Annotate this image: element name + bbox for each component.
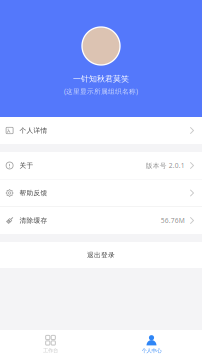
button[interactable]: 帮助反馈 [0,179,202,206]
staticText: 工作台 [43,347,58,354]
staticText: 版本号 2.0.1 [146,161,185,170]
button[interactable]: 退出登录 [0,242,202,268]
staticText: 退出登录 [87,251,115,259]
button[interactable]: 关于 [0,152,202,179]
staticText: (这里显示所属组织名称) [64,87,138,96]
button[interactable]: 工作台 [0,330,101,359]
staticText: 个人中心 [141,347,161,354]
staticText: 一针知秋君莫笑 [73,74,129,84]
staticText: 清除缓存 [19,216,47,225]
button[interactable]: 清除缓存 [0,207,202,234]
staticText: 个人详情 [19,126,47,135]
button[interactable]: 个人中心 [101,330,202,359]
staticText: 56.76M [161,216,185,225]
button[interactable]: 个人详情 [0,117,202,144]
staticText: 帮助反馈 [19,189,47,197]
staticText: 关于 [19,161,33,170]
